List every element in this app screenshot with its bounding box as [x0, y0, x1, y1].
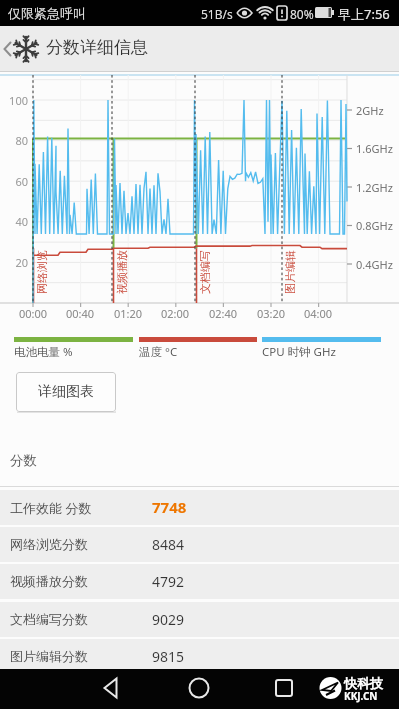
button[interactable]: 网络浏览分数 — [0, 527, 399, 562]
staticText: 02:40 — [203, 306, 243, 321]
staticText: CPU 时钟 GHz — [262, 344, 336, 360]
button[interactable]: 工作效能 分数 — [0, 490, 399, 525]
staticText: 9815 — [152, 647, 185, 666]
staticText: 8484 — [152, 535, 185, 554]
staticText: 视频播放分数 — [10, 573, 88, 589]
staticText: 快科技 — [344, 675, 383, 691]
button[interactable]: 文档编写分数 — [0, 602, 399, 637]
button[interactable] — [98, 677, 122, 701]
staticText: 图片编辑 — [283, 250, 297, 294]
staticText: 工作效能 分数 — [10, 499, 92, 517]
staticText: 分数 — [10, 452, 37, 469]
staticText: 00:40 — [60, 306, 100, 321]
staticText: 03:20 — [251, 306, 291, 321]
staticText: 文档编写分数 — [10, 611, 88, 627]
staticText: 1.2GHz — [356, 180, 393, 195]
staticText: 图片编辑分数 — [10, 648, 88, 664]
staticText: 1.6GHz — [356, 141, 393, 156]
button[interactable] — [272, 677, 296, 701]
staticText: 仅限紧急呼叫 — [8, 5, 86, 21]
staticText: 分数详细信息 — [46, 37, 148, 58]
staticText: 0.4GHz — [356, 257, 393, 272]
button[interactable]: 视频播放分数 — [0, 564, 399, 599]
staticText: 视频播放 — [115, 250, 129, 294]
staticText: 80% — [290, 6, 314, 22]
button[interactable]: 图片编辑分数 — [0, 639, 399, 674]
staticText: 温度 °C — [139, 344, 178, 360]
button[interactable]: 详细图表 — [16, 372, 116, 412]
staticText: KKJ.CN — [344, 689, 378, 703]
button[interactable]: 分数详细信息 — [0, 26, 399, 72]
staticText: 04:00 — [298, 306, 338, 321]
staticText: 7748 — [152, 497, 187, 517]
staticText: 51B/s — [201, 6, 233, 22]
staticText: 4792 — [152, 572, 185, 591]
staticText: 网络浏览 — [35, 250, 49, 294]
staticText: 60 — [0, 174, 28, 189]
button[interactable] — [187, 677, 211, 701]
staticText: 01:20 — [108, 306, 148, 321]
staticText: 网络浏览分数 — [10, 536, 88, 552]
staticText: 2GHz — [356, 103, 384, 118]
staticText: 40 — [0, 214, 28, 229]
staticText: 80 — [0, 133, 28, 148]
staticText: 详细图表 — [38, 383, 94, 401]
staticText: 文档编写 — [198, 250, 212, 294]
staticText: 9029 — [152, 610, 185, 629]
staticText: 电池电量 % — [14, 344, 73, 360]
staticText: 02:00 — [155, 306, 195, 321]
staticText: 00:00 — [13, 306, 53, 321]
staticText: 100 — [0, 93, 28, 108]
staticText: 早上7:56 — [338, 5, 390, 23]
staticText: 20 — [0, 255, 28, 270]
staticText: 0.8GHz — [356, 218, 393, 233]
